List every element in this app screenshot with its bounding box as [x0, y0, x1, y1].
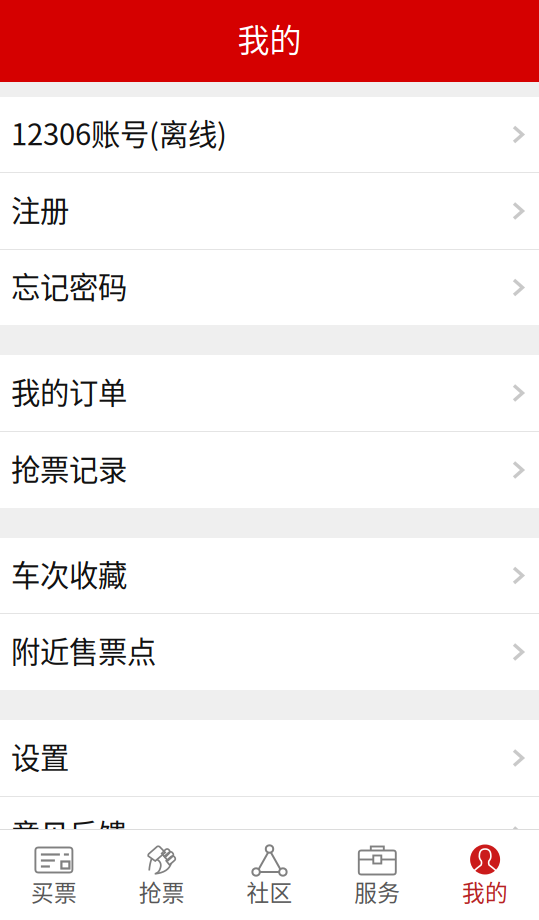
button[interactable]: 注册	[0, 173, 539, 249]
staticText: 我的	[237, 15, 301, 61]
button[interactable]: 服务	[323, 830, 431, 920]
staticText: 车次收藏	[11, 552, 127, 595]
staticText: 服务	[354, 875, 400, 899]
button[interactable]: 附近售票点	[0, 614, 539, 690]
button[interactable]: 抢票记录	[0, 432, 539, 508]
button[interactable]: 买票	[0, 830, 108, 920]
button[interactable]: 社区	[216, 830, 323, 920]
button[interactable]: 我的订单	[0, 355, 539, 431]
staticText: 抢票记录	[11, 447, 127, 489]
staticText: 注册	[11, 188, 69, 230]
button[interactable]: 车次收藏	[0, 538, 539, 613]
staticText: 我的订单	[11, 370, 127, 412]
staticText: 设置	[11, 735, 69, 777]
staticText: 抢票	[139, 875, 185, 899]
button[interactable]: 设置	[0, 720, 539, 796]
button[interactable]: 抢票	[108, 830, 216, 920]
button[interactable]: 我的	[431, 830, 539, 920]
staticText: 社区	[246, 875, 292, 899]
button[interactable]: 忘记密码	[0, 250, 539, 325]
staticText: 附近售票点	[11, 629, 156, 671]
staticText: 意见反馈	[11, 812, 127, 854]
staticText: 12306账号(离线)	[11, 111, 227, 154]
button[interactable]: 12306账号(离线)	[0, 97, 539, 172]
staticText: 我的	[462, 875, 508, 899]
button[interactable]: 意见反馈	[0, 797, 539, 873]
staticText: 买票	[31, 875, 77, 899]
staticText: 忘记密码	[11, 264, 127, 307]
